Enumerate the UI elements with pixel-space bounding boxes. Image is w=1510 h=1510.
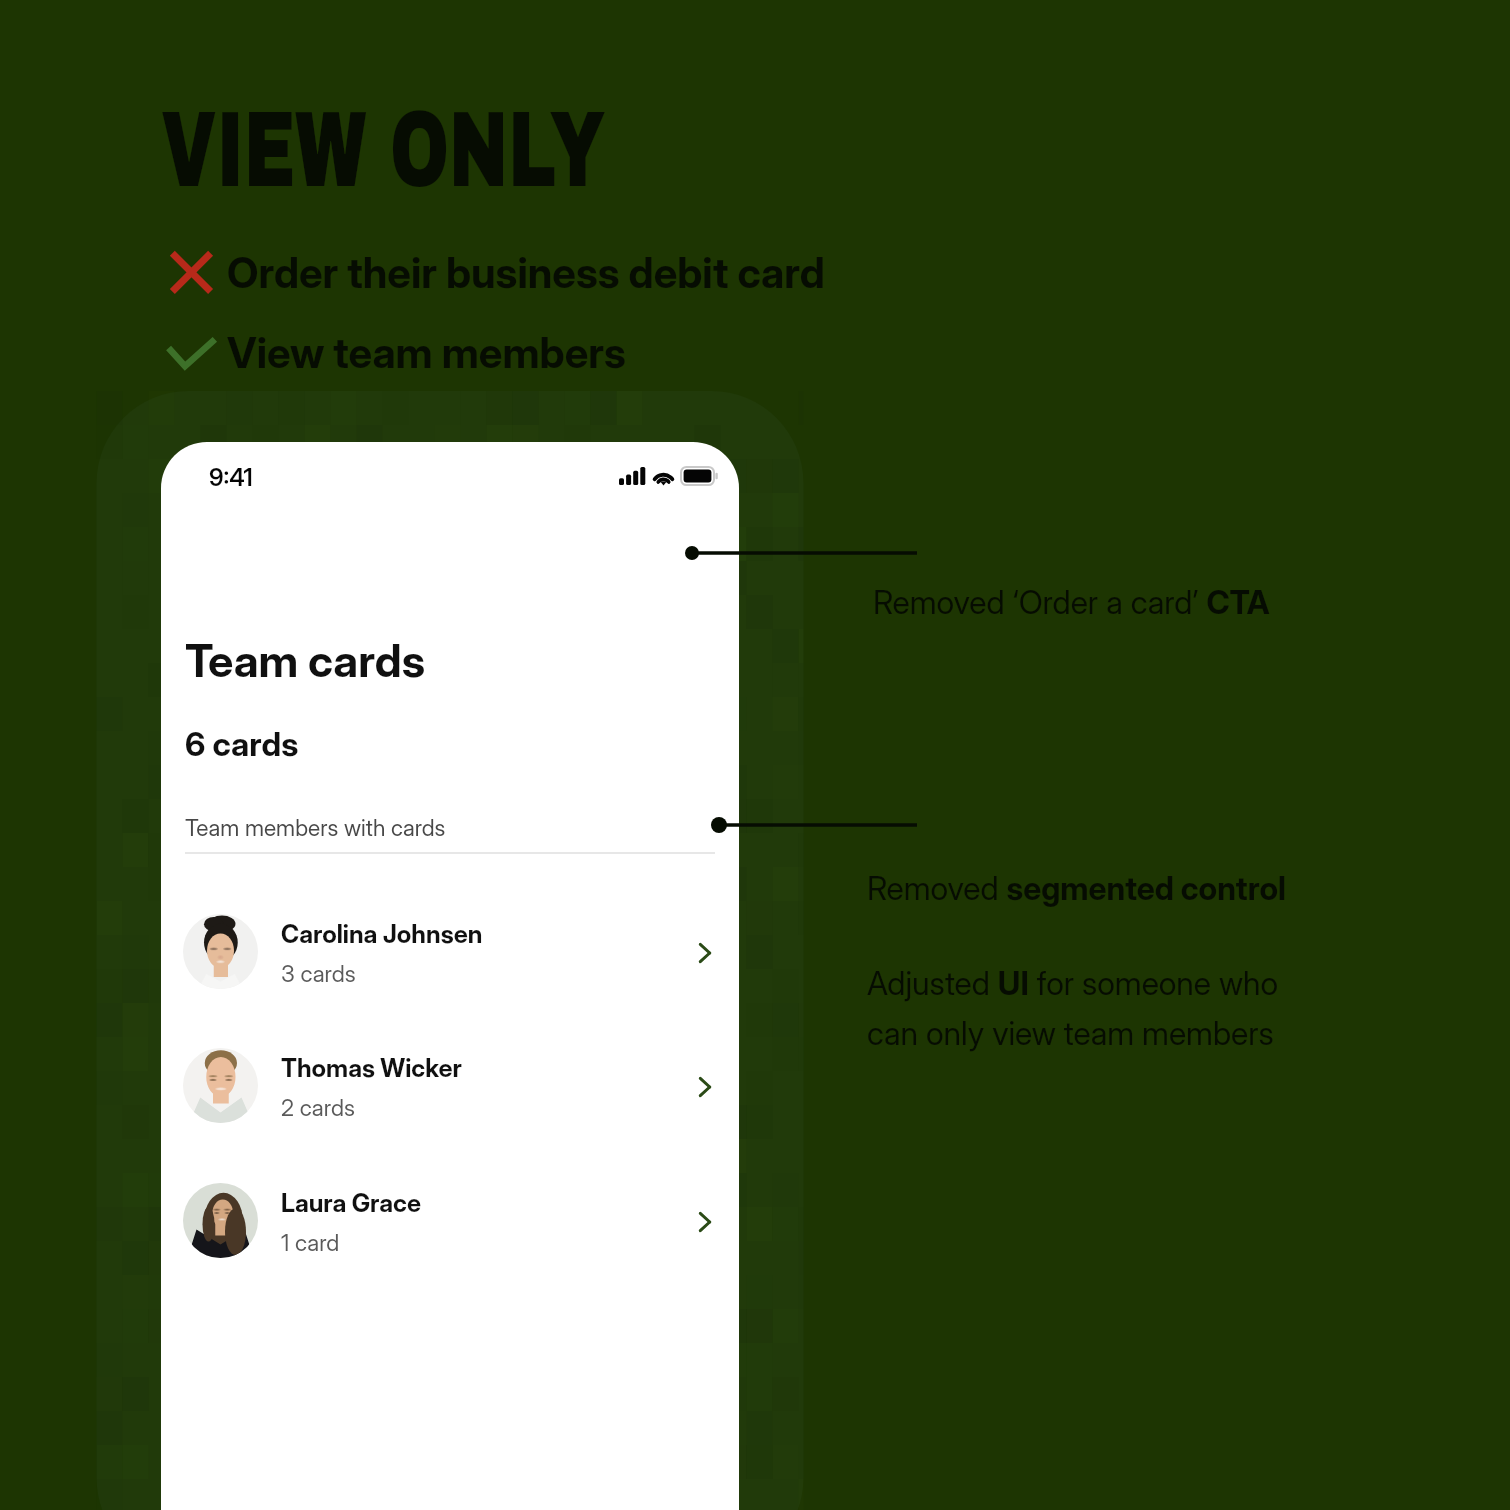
- other: Open Carolina Johnsen: [698, 942, 712, 964]
- staticText: VIEW ONLY: [161, 92, 605, 208]
- staticText: Team members with cards: [185, 814, 446, 841]
- staticText: 3 cards: [281, 960, 356, 988]
- staticText: 9:41: [209, 463, 253, 492]
- staticText: Adjusted UI for someone who can only vie…: [867, 964, 1279, 1053]
- staticText: Removed ‘Order a card’ CTA: [873, 583, 1270, 622]
- staticText: 6 cards: [185, 724, 299, 764]
- staticText: Laura Grace: [281, 1188, 421, 1218]
- other: Open Laura Grace: [698, 1211, 712, 1233]
- button[interactable]: Laura Grace: [161, 1173, 739, 1267]
- staticText: Team cards: [185, 633, 426, 687]
- staticText: View team members: [227, 327, 626, 378]
- other: Open Thomas Wicker: [698, 1076, 712, 1098]
- staticText: Thomas Wicker: [281, 1053, 462, 1083]
- button[interactable]: Thomas Wicker: [161, 1038, 739, 1132]
- staticText: Carolina Johnsen: [281, 919, 483, 949]
- staticText: 2 cards: [281, 1094, 355, 1122]
- staticText: Removed segmented control: [867, 869, 1286, 908]
- staticText: 1 card: [281, 1229, 340, 1257]
- staticText: Order their business debit card: [227, 247, 825, 298]
- button[interactable]: Carolina Johnsen: [161, 904, 739, 998]
